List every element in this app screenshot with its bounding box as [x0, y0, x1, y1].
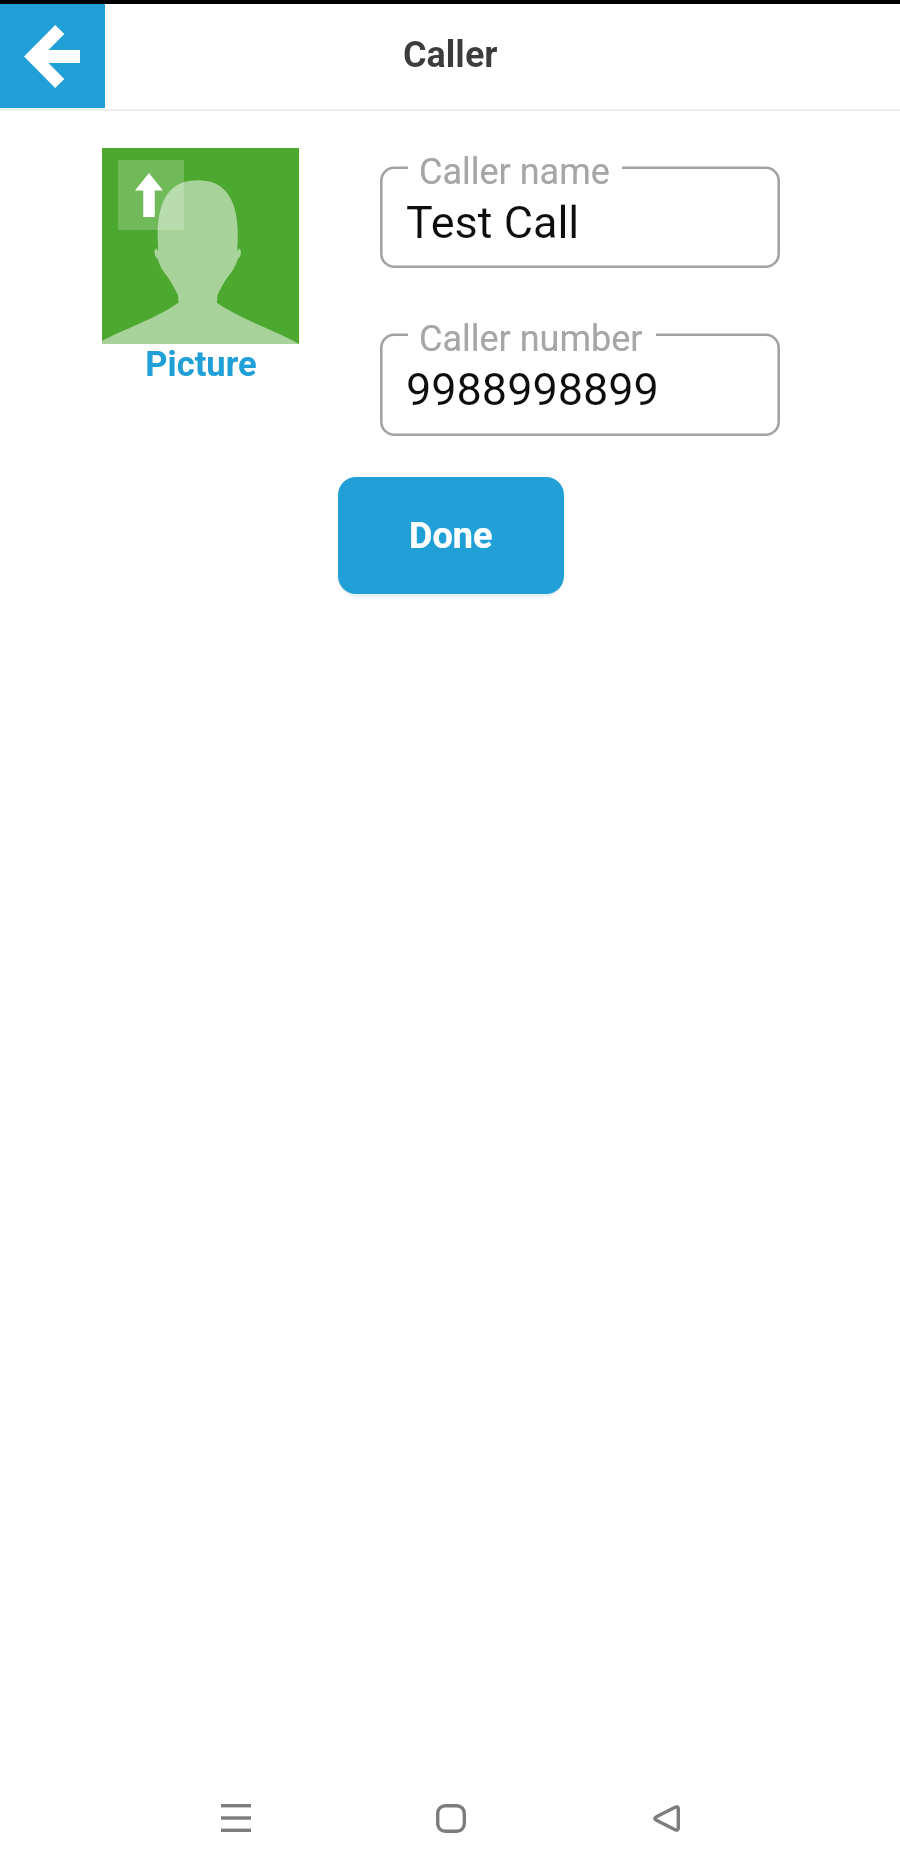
- button[interactable]: Recent apps: [196, 1758, 275, 1873]
- button[interactable]: Navigate up: [0, 4, 105, 108]
- button[interactable]: Picture: [102, 148, 299, 384]
- button[interactable]: Caller name: [380, 158, 780, 268]
- button[interactable]: Back: [626, 1758, 705, 1873]
- button[interactable]: Done: [338, 477, 564, 594]
- button[interactable]: Caller number: [380, 325, 780, 436]
- staticText: Done: [409, 515, 493, 557]
- staticText: Caller: [403, 34, 498, 76]
- button[interactable]: Home: [411, 1758, 490, 1873]
- staticText: Picture: [145, 344, 257, 384]
- staticText: Caller number: [419, 318, 643, 360]
- staticText: Test Call: [406, 196, 580, 249]
- staticText: Caller name: [419, 151, 610, 193]
- staticText: 9988998899: [406, 363, 659, 416]
